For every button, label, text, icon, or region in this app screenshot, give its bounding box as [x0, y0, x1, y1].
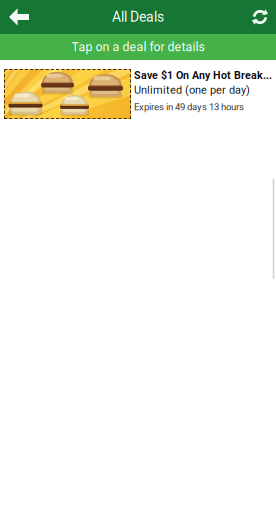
staticText: All Deals — [112, 9, 164, 25]
staticText: Tap on a deal for details — [71, 40, 204, 54]
button[interactable]: Refresh — [241, 0, 276, 34]
staticText: Expires in 49 days 13 hours — [134, 101, 244, 113]
button[interactable]: Save $1 On Any Hot Break... — [0, 60, 276, 119]
staticText: Save $1 On Any Hot Break... — [134, 69, 272, 81]
button[interactable]: Back — [0, 0, 38, 34]
staticText: Unlimited (one per day) — [134, 83, 250, 96]
